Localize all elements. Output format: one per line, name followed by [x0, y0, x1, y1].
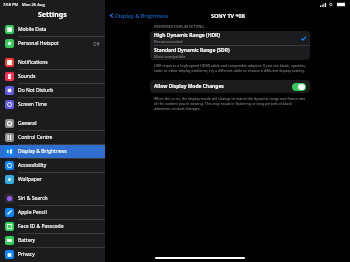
button[interactable]: Siri & Search	[0, 192, 105, 205]
staticText: Mon 26 Aug	[22, 2, 45, 7]
staticText: Settings	[38, 10, 67, 20]
button[interactable]: Personal Hotspot	[0, 37, 105, 50]
other: Allow Display Mode Changes, on	[292, 83, 306, 91]
staticText: Accessibility	[18, 162, 47, 169]
staticText: Mobile Data	[18, 26, 47, 33]
staticText: Allow Display Mode Changes	[154, 83, 292, 90]
staticText: 7:58 PM	[3, 2, 19, 7]
staticText: Standard Dynamic Range (SDR)	[154, 47, 230, 54]
staticText: Sounds	[18, 73, 36, 80]
staticText: Control Centre	[18, 134, 53, 141]
button[interactable]: Privacy	[0, 248, 105, 261]
button[interactable]: Face ID & Passcode	[0, 220, 105, 233]
staticText: Battery	[18, 237, 36, 244]
staticText: Do Not Disturb	[18, 87, 54, 94]
button[interactable]: Control Centre	[0, 131, 105, 144]
staticText: Most compatible	[154, 54, 186, 59]
staticText: Privacy	[18, 251, 35, 258]
button[interactable]: Sounds	[0, 70, 105, 83]
staticText: Face ID & Passcode	[18, 223, 64, 230]
staticText: High Dynamic Range (HDR)	[154, 32, 220, 39]
button[interactable]: Mobile Data	[0, 23, 105, 36]
button[interactable]: Allow Display Mode Changes	[150, 80, 310, 93]
button[interactable]: Display & Brightness	[0, 145, 105, 158]
staticText: Personal Hotspot	[18, 40, 59, 47]
button[interactable]: Apple Pencil	[0, 206, 105, 219]
button[interactable]: High Dynamic Range (HDR)	[150, 31, 310, 45]
button[interactable]: Wallpaper	[0, 173, 105, 186]
staticText: HDR requires a high-speed HDMI cable and…	[154, 63, 306, 73]
button[interactable]: Back to Display & Brightness	[109, 12, 169, 19]
staticText: Apple Pencil	[18, 209, 47, 216]
button[interactable]: Do Not Disturb	[0, 84, 105, 97]
staticText: Display & Brightness	[18, 148, 67, 155]
staticText: Siri & Search	[18, 195, 48, 202]
staticText: Display & Brightness	[115, 12, 169, 19]
button[interactable]: Screen Time	[0, 98, 105, 111]
button[interactable]: Notifications	[0, 56, 105, 69]
staticText: General	[18, 120, 37, 127]
staticText: SONY TV *08	[211, 12, 245, 19]
staticText: Screen Time	[18, 101, 47, 108]
staticText: When this is on, the display mode will c…	[154, 96, 306, 111]
staticText: Off	[93, 41, 100, 47]
button[interactable]: Battery	[0, 234, 105, 247]
staticText: Wallpaper	[18, 176, 42, 183]
staticText: Notifications	[18, 59, 48, 66]
button[interactable]: Accessibility	[0, 159, 105, 172]
staticText: Recommended	[154, 39, 183, 44]
button[interactable]: General	[0, 117, 105, 130]
staticText: PREFERRED DISPLAY SETTING	[154, 24, 204, 29]
button[interactable]: Standard Dynamic Range (SDR)	[150, 46, 310, 60]
